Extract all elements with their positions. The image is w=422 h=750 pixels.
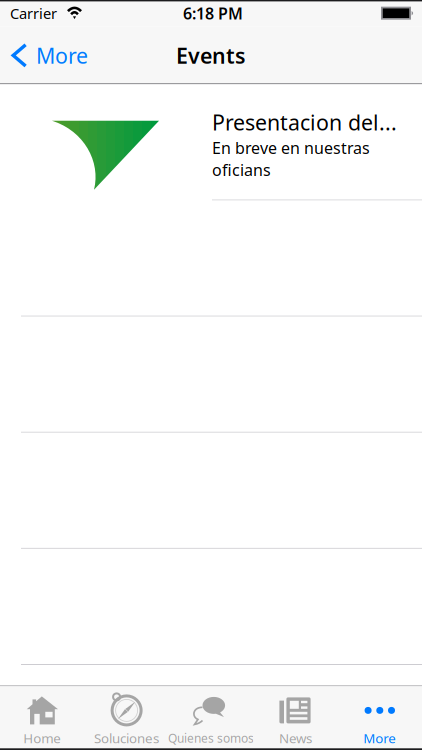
button[interactable]: News [253, 685, 338, 750]
staticText: Presentacion del... [212, 108, 397, 136]
staticText: Soluciones [94, 729, 159, 747]
button[interactable]: Soluciones [84, 685, 169, 750]
button[interactable]: Quienes somos [169, 685, 253, 750]
staticText: Home [23, 729, 61, 747]
staticText: More [36, 41, 88, 69]
staticText: Carrier [10, 3, 57, 23]
staticText: En breve en nuestras [212, 137, 370, 158]
button[interactable]: Presentacion del... [0, 84, 422, 200]
staticText: oficians [212, 159, 271, 180]
button[interactable]: More [338, 685, 422, 750]
button[interactable]: Home [0, 685, 84, 750]
staticText: Events [176, 41, 246, 69]
staticText: More [363, 729, 396, 747]
staticText: 6:18 PM [183, 3, 243, 24]
staticText: News [279, 729, 312, 747]
button[interactable]: More [0, 33, 98, 77]
staticText: Quienes somos [168, 730, 254, 746]
